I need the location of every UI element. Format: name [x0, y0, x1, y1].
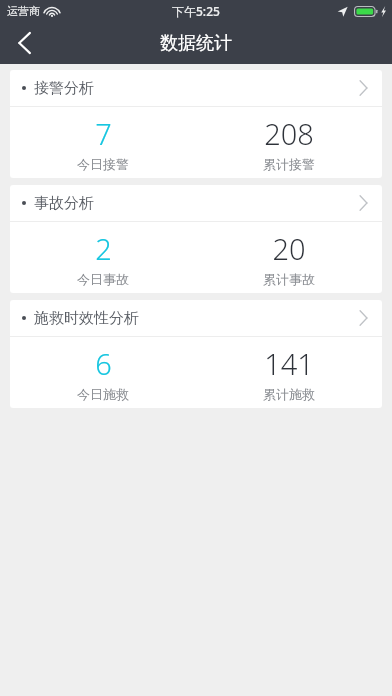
staticText: 今日施救 [77, 386, 129, 402]
staticText: 数据统计 [160, 32, 232, 55]
staticText: 2 [95, 229, 112, 268]
button[interactable]: 接警分析 [10, 70, 382, 178]
staticText: 施救时效性分析 [34, 309, 139, 328]
staticText: 事故分析 [34, 194, 94, 213]
staticText: 今日接警 [77, 156, 129, 172]
button[interactable]: 施救时效性分析 [10, 300, 382, 408]
staticText: 今日事故 [77, 271, 129, 287]
staticText: 20 [272, 229, 306, 268]
staticText: 累计施救 [263, 386, 315, 402]
button[interactable]: 事故分析 [10, 185, 382, 293]
staticText: 累计接警 [263, 156, 315, 172]
staticText: 6 [95, 344, 112, 383]
staticText: 累计事故 [263, 271, 315, 287]
staticText: 7 [95, 114, 112, 153]
staticText: 208 [264, 114, 314, 153]
staticText: 运营商 [7, 4, 40, 18]
staticText: 141 [264, 344, 314, 383]
staticText: 下午5:25 [172, 3, 220, 19]
staticText: 接警分析 [34, 79, 94, 98]
button[interactable]: Back [0, 22, 48, 64]
